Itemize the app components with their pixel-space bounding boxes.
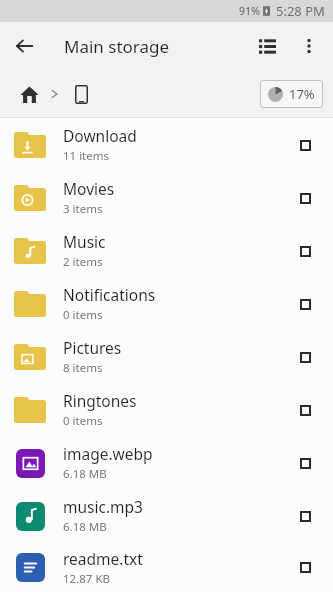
staticText: 91% bbox=[239, 4, 260, 18]
button[interactable]: Select Pictures bbox=[285, 337, 325, 377]
staticText: 6.18 MB bbox=[63, 466, 107, 482]
staticText: 2 items bbox=[63, 254, 103, 270]
button[interactable]: More options bbox=[289, 26, 329, 66]
staticText: 3 items bbox=[63, 201, 103, 217]
staticText: 6.18 MB bbox=[63, 519, 107, 535]
button[interactable]: Pictures bbox=[0, 330, 333, 383]
button[interactable]: readme.txt bbox=[0, 542, 333, 592]
button[interactable]: 17% bbox=[260, 80, 323, 108]
button[interactable]: Back bbox=[0, 22, 48, 70]
staticText: image.webp bbox=[63, 443, 153, 464]
button[interactable]: Select Notifications bbox=[285, 284, 325, 324]
staticText: music.mp3 bbox=[63, 496, 143, 517]
staticText: 5:28 PM bbox=[276, 2, 325, 20]
staticText: Main storage bbox=[64, 35, 170, 58]
staticText: 8 items bbox=[63, 360, 103, 376]
staticText: 12.87 KB bbox=[63, 571, 110, 587]
staticText: Music bbox=[63, 231, 106, 252]
button[interactable]: Select Music bbox=[285, 231, 325, 271]
button[interactable]: Notifications bbox=[0, 277, 333, 330]
staticText: 0 items bbox=[63, 413, 103, 429]
button[interactable]: Select Download bbox=[285, 125, 325, 165]
button[interactable]: image.webp bbox=[0, 436, 333, 489]
staticText: Notifications bbox=[63, 284, 156, 305]
staticText: 17% bbox=[289, 85, 315, 103]
staticText: 0 items bbox=[63, 307, 103, 323]
button[interactable]: Music bbox=[0, 224, 333, 277]
button[interactable]: Select image.webp bbox=[285, 443, 325, 483]
button[interactable]: music.mp3 bbox=[0, 489, 333, 542]
button[interactable]: Movies bbox=[0, 171, 333, 224]
staticText: 11 items bbox=[63, 148, 110, 164]
staticText: Movies bbox=[63, 178, 115, 199]
staticText: Download bbox=[63, 125, 137, 146]
button[interactable]: Ringtones bbox=[0, 383, 333, 436]
staticText: Pictures bbox=[63, 337, 122, 358]
button[interactable]: Select readme.txt bbox=[285, 547, 325, 587]
staticText: Ringtones bbox=[63, 390, 137, 411]
button[interactable]: Select Movies bbox=[285, 178, 325, 218]
staticText: readme.txt bbox=[63, 548, 143, 569]
button[interactable]: Select Ringtones bbox=[285, 390, 325, 430]
button[interactable]: Main storage bbox=[65, 78, 97, 110]
button[interactable]: View mode bbox=[245, 24, 289, 68]
button[interactable]: Home bbox=[12, 77, 46, 111]
button[interactable]: Download bbox=[0, 118, 333, 171]
button[interactable]: Select music.mp3 bbox=[285, 496, 325, 536]
